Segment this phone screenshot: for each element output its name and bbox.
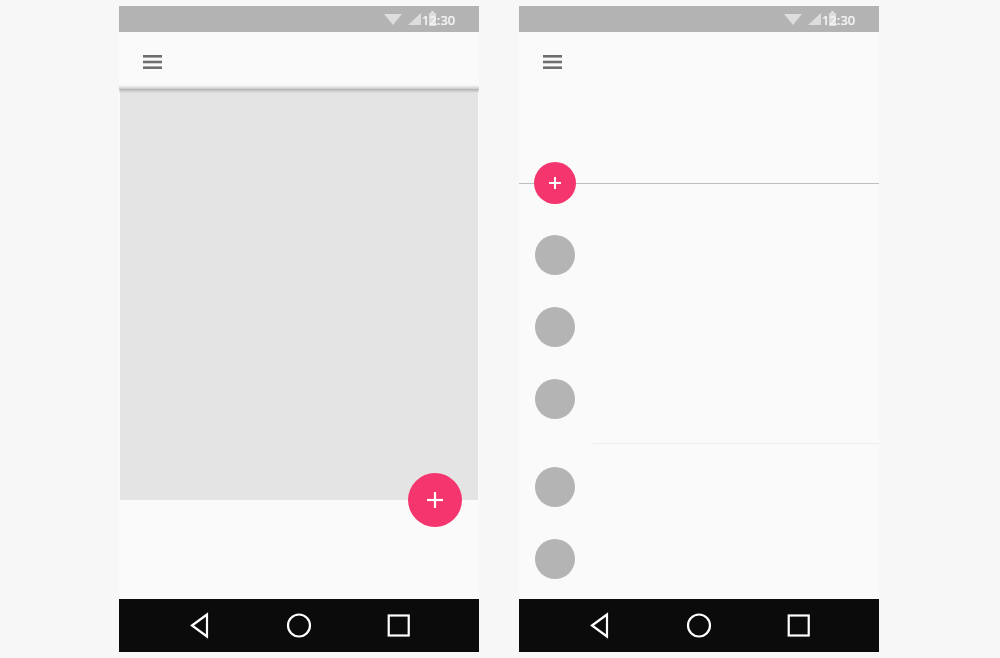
button[interactable]: Contact	[535, 467, 575, 507]
button[interactable]: Menu	[532, 42, 572, 82]
button[interactable]: Add	[408, 473, 462, 527]
button[interactable]: Contact	[535, 539, 575, 579]
button[interactable]: Add	[534, 162, 576, 204]
staticText: 12:30	[422, 11, 456, 29]
button[interactable]: Menu	[132, 42, 172, 82]
button[interactable]: Contact	[535, 307, 575, 347]
staticText: 12:30	[822, 11, 856, 29]
button[interactable]: Contact	[535, 235, 575, 275]
button[interactable]: Contact	[535, 379, 575, 419]
